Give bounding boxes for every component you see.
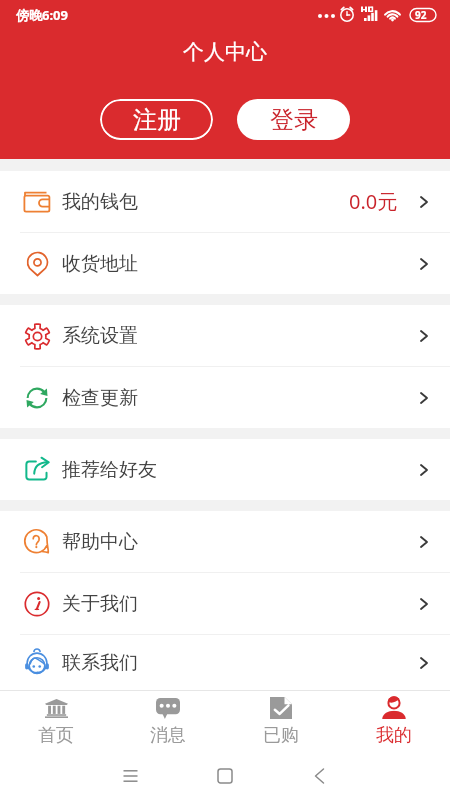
staticText: 消息 <box>150 724 186 747</box>
button[interactable]: 我的钱包 <box>0 171 450 232</box>
staticText: 首页 <box>38 724 74 747</box>
staticText: 个人中心 <box>183 39 267 65</box>
button[interactable]: 我的 <box>337 691 450 752</box>
staticText: 帮助中心 <box>62 530 138 554</box>
staticText: 我的钱包 <box>62 190 138 214</box>
button[interactable]: 登录 <box>237 99 350 140</box>
staticText: 联系我们 <box>62 651 138 675</box>
button[interactable]: 推荐给好友 <box>0 439 450 500</box>
button[interactable]: 首页 <box>0 691 112 752</box>
button[interactable]: 注册 <box>100 99 213 140</box>
staticText: 登录 <box>270 105 318 135</box>
button[interactable]: 关于我们 <box>0 573 450 634</box>
button[interactable]: Recents <box>116 762 144 790</box>
staticText: 92 <box>415 8 427 22</box>
button[interactable]: 系统设置 <box>0 305 450 366</box>
staticText: 已购 <box>263 724 299 747</box>
button[interactable]: 帮助中心 <box>0 511 450 572</box>
staticText: 关于我们 <box>62 592 138 616</box>
staticText: 我的 <box>376 724 412 747</box>
staticText: 收货地址 <box>62 252 138 276</box>
button[interactable]: 联系我们 <box>0 635 450 690</box>
staticText: 系统设置 <box>62 324 138 348</box>
button[interactable]: 消息 <box>112 691 224 752</box>
staticText: 检查更新 <box>62 386 138 410</box>
button[interactable]: 收货地址 <box>0 233 450 294</box>
staticText: 注册 <box>133 105 181 135</box>
staticText: 推荐给好友 <box>62 458 157 482</box>
button[interactable]: 已购 <box>224 691 337 752</box>
staticText: 傍晚6:09 <box>16 6 68 24</box>
button[interactable]: 检查更新 <box>0 367 450 428</box>
staticText: 0.0元 <box>349 188 398 215</box>
